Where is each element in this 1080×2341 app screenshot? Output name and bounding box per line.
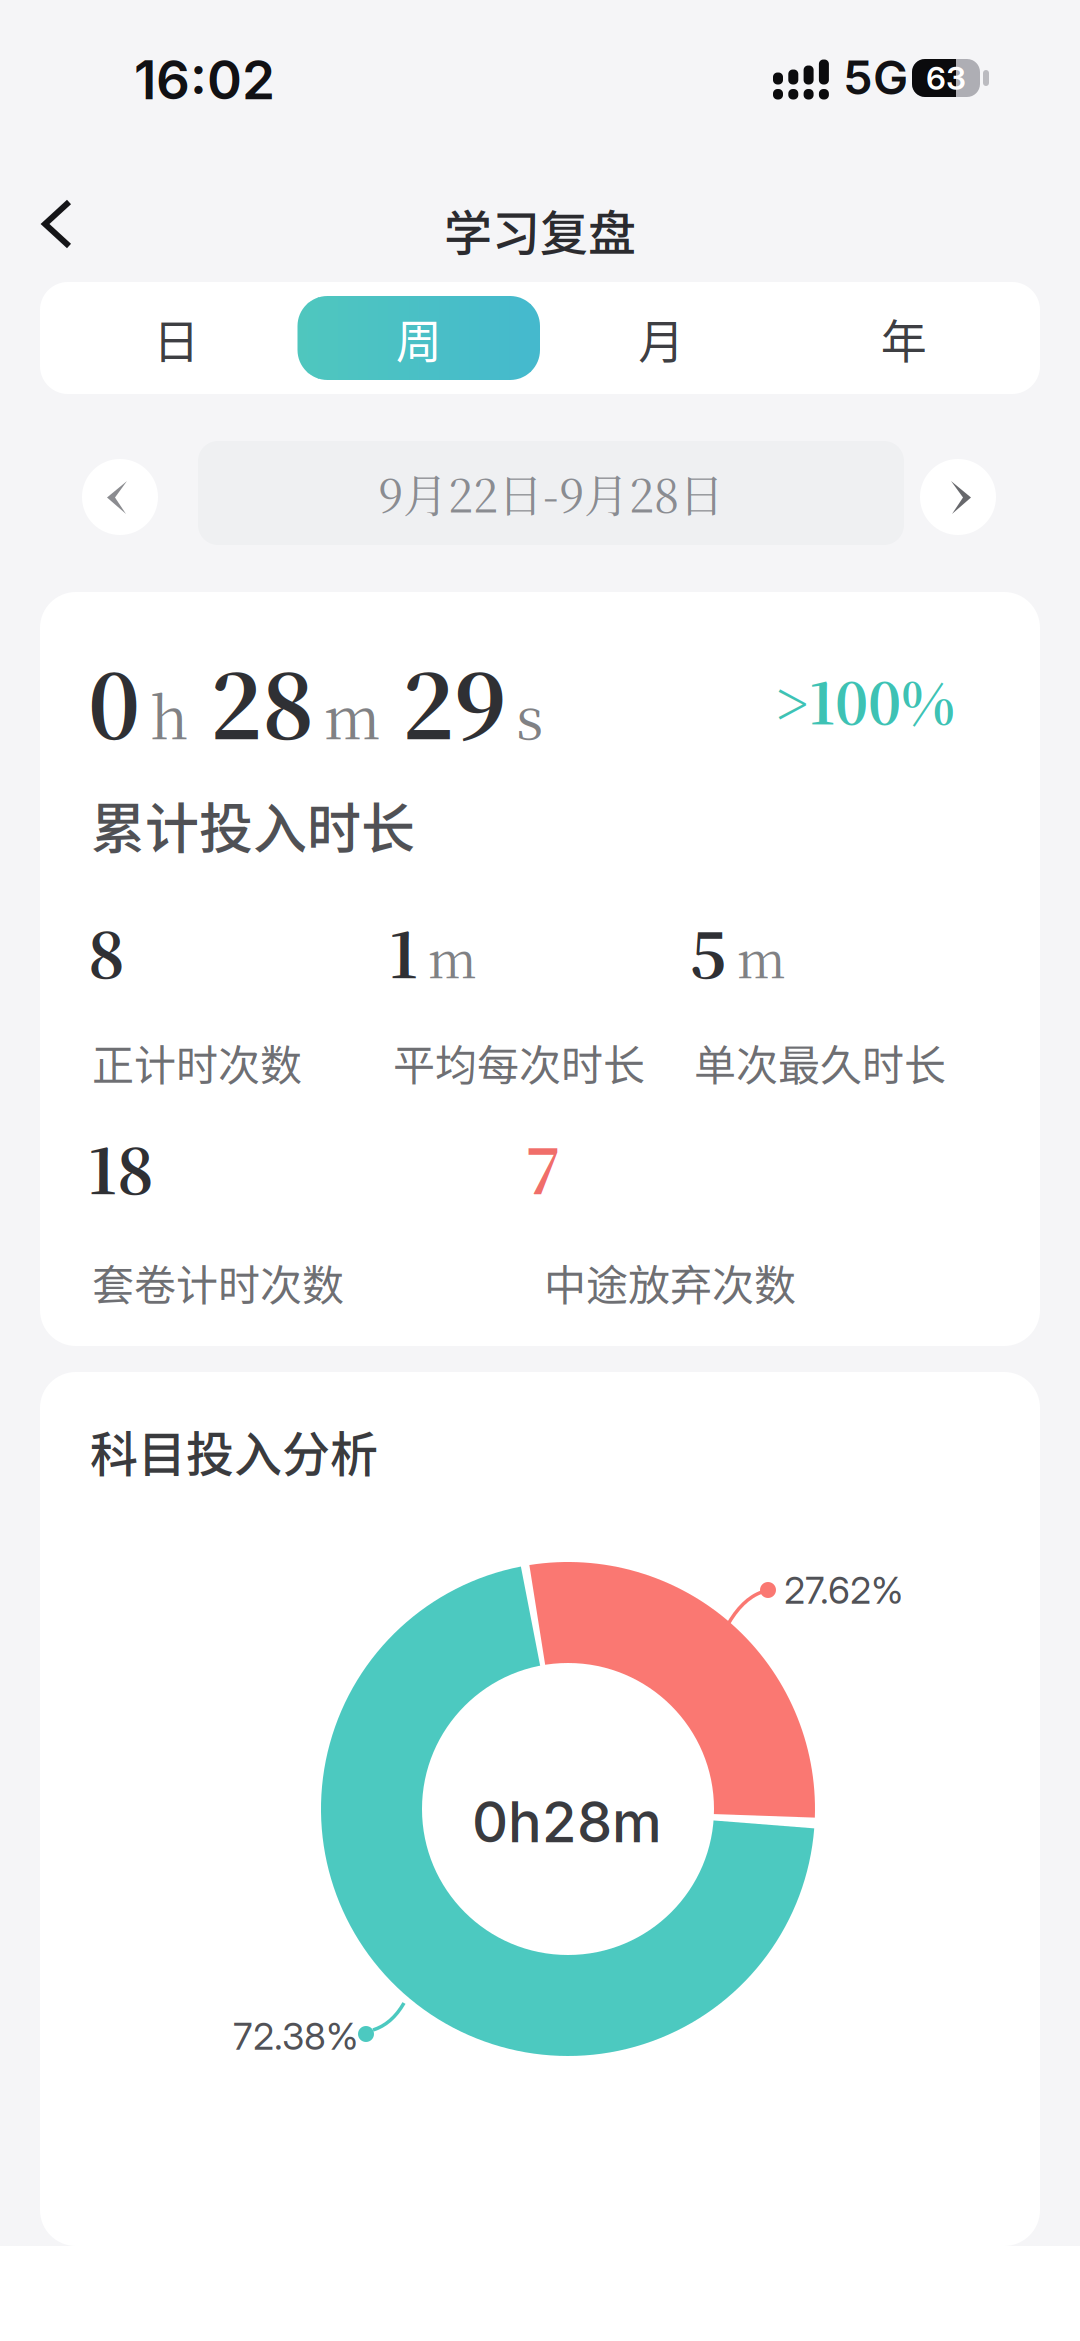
staticText: 平均每次时长 (393, 1032, 645, 1093)
staticText: 中途放弃次数 (544, 1252, 796, 1313)
staticText: 5G (843, 49, 908, 106)
staticText: 72.38% (233, 2014, 358, 2059)
button[interactable]: Back (20, 192, 110, 256)
staticText: 正计时次数 (92, 1032, 302, 1093)
staticText: 0 (88, 638, 140, 764)
staticText: 累计投入时长 (91, 786, 415, 864)
staticText: 9月22日-9月28日 (378, 461, 724, 525)
staticText: 7 (525, 1123, 561, 1212)
staticText: m (324, 672, 380, 756)
staticText: m (737, 921, 786, 993)
button[interactable]: Next week (920, 459, 996, 535)
staticText: 8 (88, 907, 125, 996)
button[interactable]: 日 (55, 282, 297, 394)
staticText: 套卷计时次数 (92, 1252, 344, 1313)
staticText: 日 (153, 305, 199, 371)
button[interactable]: Previous week (82, 459, 158, 535)
staticText: 63 (926, 59, 966, 97)
staticText: 1 (389, 907, 418, 996)
staticText: 月 (638, 305, 684, 371)
staticText: 18 (88, 1123, 154, 1212)
button[interactable]: 月 (540, 282, 782, 394)
staticText: 科目投入分析 (90, 1416, 378, 1485)
button[interactable]: 周 (297, 282, 540, 394)
staticText: s (516, 672, 543, 756)
staticText: 学习复盘 (444, 195, 636, 264)
staticText: 16:02 (134, 48, 275, 112)
staticText: 5 (690, 907, 727, 996)
staticText: 27.62% (784, 1568, 903, 1613)
staticText: >100% (775, 660, 955, 740)
staticText: 周 (396, 305, 442, 371)
staticText: m (428, 921, 477, 993)
staticText: 28 (210, 638, 314, 764)
staticText: 29 (402, 638, 506, 764)
staticText: 单次最久时长 (694, 1032, 946, 1093)
staticText: 0h28m (472, 1788, 662, 1856)
button[interactable]: 9月22日-9月28日 (198, 441, 904, 545)
staticText: h (150, 672, 188, 756)
staticText: 年 (881, 305, 927, 371)
button[interactable]: 年 (782, 282, 1025, 394)
